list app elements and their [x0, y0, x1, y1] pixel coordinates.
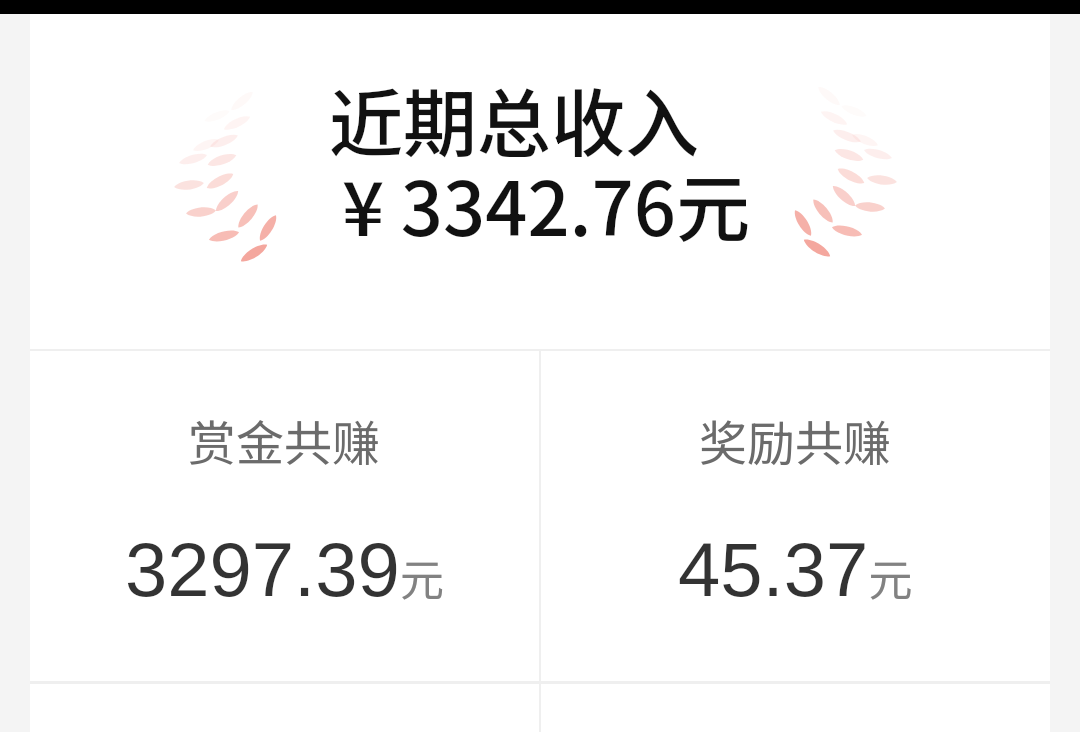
- other: Laurel decoration: [171, 85, 281, 275]
- staticText: 奖励共赚: [699, 405, 892, 475]
- staticText: ¥ 3342.76元: [291, 150, 801, 257]
- staticText: 3297.39元: [125, 527, 444, 612]
- other: Laurel decoration: [790, 80, 900, 270]
- staticText: 赏金共赚: [188, 405, 381, 475]
- button[interactable]: 奖励共赚: [541, 351, 1050, 612]
- staticText: 近期总收入: [259, 65, 769, 172]
- button[interactable]: 赏金共赚: [30, 351, 539, 612]
- button[interactable]: Laurel decoration: [30, 14, 1050, 350]
- staticText: 45.37元: [678, 527, 913, 612]
